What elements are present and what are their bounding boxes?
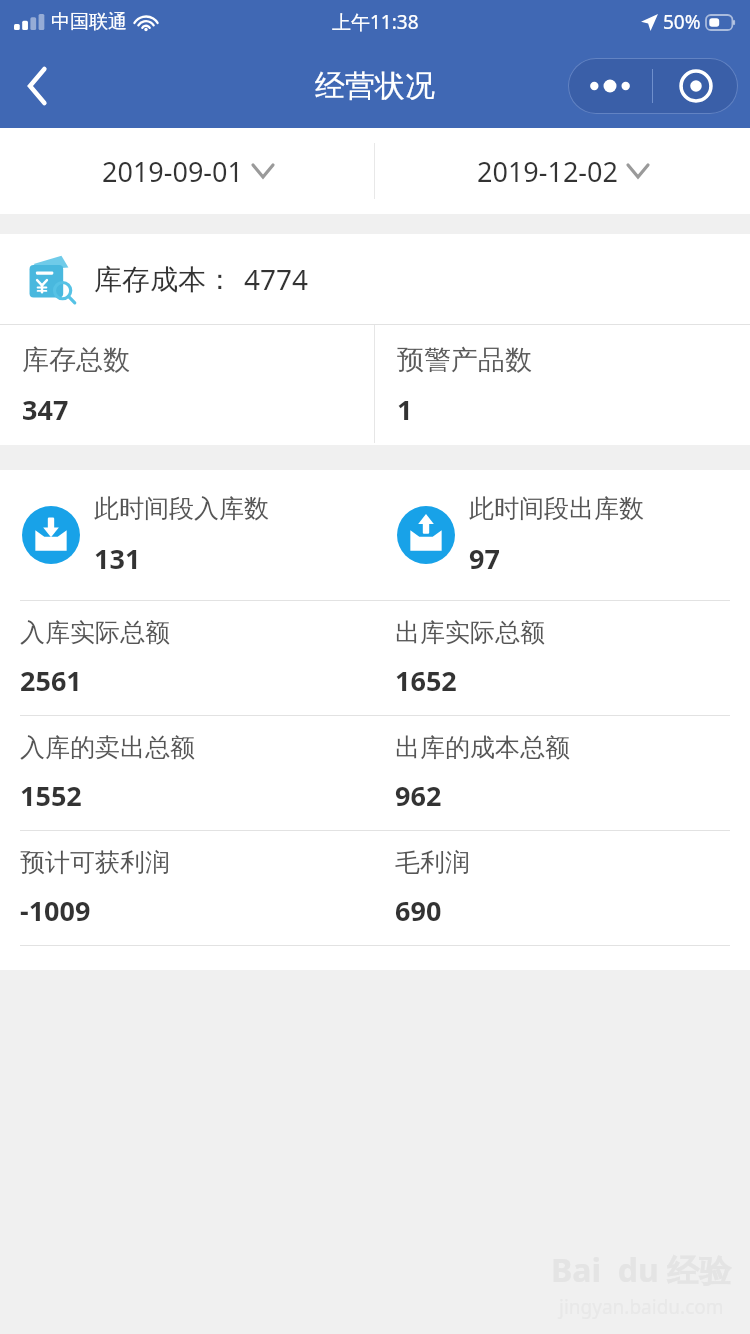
staticText: 出库实际总额 bbox=[395, 617, 545, 648]
button[interactable]: 返回 bbox=[10, 58, 66, 114]
staticText: 毛利润 bbox=[395, 847, 470, 878]
staticText: 此时间段出库数 bbox=[469, 493, 644, 524]
staticText: 347 bbox=[22, 391, 69, 428]
button[interactable] bbox=[568, 58, 738, 114]
staticText: 入库实际总额 bbox=[20, 617, 170, 648]
staticText: 690 bbox=[395, 892, 442, 929]
button[interactable]: 毛利润 bbox=[375, 831, 750, 945]
staticText: 预计可获利润 bbox=[20, 847, 170, 878]
staticText: 1 bbox=[397, 391, 413, 428]
button[interactable]: 出库的成本总额 bbox=[375, 716, 750, 830]
staticText: 上午11:38 bbox=[332, 9, 419, 35]
button[interactable]: 2019-12-02 bbox=[375, 128, 750, 214]
button[interactable]: 入库实际总额 bbox=[0, 601, 375, 715]
staticText: 出库的成本总额 bbox=[395, 732, 570, 763]
button[interactable]: 库存总数 bbox=[0, 325, 374, 445]
staticText: 2019-12-02 bbox=[477, 153, 618, 190]
staticText: 1552 bbox=[20, 777, 82, 814]
staticText: 中国联通 bbox=[51, 10, 127, 34]
staticText: -1009 bbox=[20, 892, 91, 929]
staticText: 预警产品数 bbox=[397, 343, 532, 377]
button[interactable]: 此时间段入库数 bbox=[0, 470, 375, 600]
button[interactable]: 库存成本： bbox=[0, 234, 750, 324]
staticText: 97 bbox=[469, 540, 500, 577]
staticText: 50% bbox=[663, 9, 701, 35]
button[interactable]: 此时间段出库数 bbox=[375, 470, 750, 600]
staticText: Bai du 经验 bbox=[551, 1248, 732, 1292]
button[interactable]: 2019-09-01 bbox=[0, 128, 374, 214]
staticText: 此时间段入库数 bbox=[94, 493, 269, 524]
button[interactable]: 入库的卖出总额 bbox=[0, 716, 375, 830]
button[interactable]: 出库实际总额 bbox=[375, 601, 750, 715]
button[interactable]: 预警产品数 bbox=[375, 325, 750, 445]
staticText: 4774 bbox=[244, 260, 309, 298]
staticText: 2019-09-01 bbox=[102, 153, 243, 190]
button[interactable]: 预计可获利润 bbox=[0, 831, 375, 945]
staticText: 经营状况 bbox=[315, 67, 435, 105]
staticText: 库存总数 bbox=[22, 343, 130, 377]
staticText: 2561 bbox=[20, 662, 82, 699]
staticText: 131 bbox=[94, 540, 141, 577]
staticText: 入库的卖出总额 bbox=[20, 732, 195, 763]
staticText: 库存成本： bbox=[94, 262, 234, 297]
staticText: 1652 bbox=[395, 662, 457, 699]
staticText: 962 bbox=[395, 777, 442, 814]
